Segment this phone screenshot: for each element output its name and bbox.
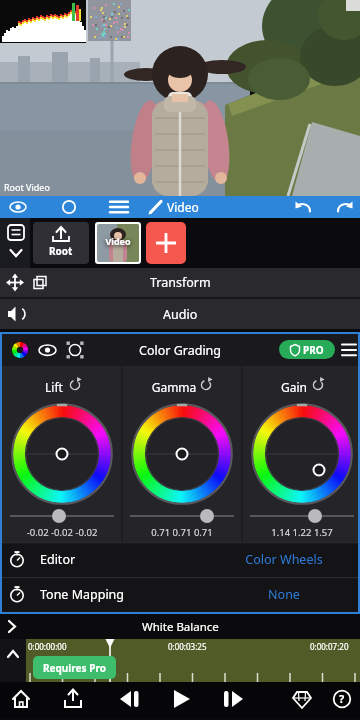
staticText: Color Wheels	[224, 551, 344, 568]
staticText: Lift	[0, 379, 114, 395]
staticText: PRO	[303, 343, 324, 357]
staticText: 0:00:00:00	[28, 641, 67, 652]
button[interactable]	[280, 196, 320, 218]
button[interactable]	[206, 682, 258, 718]
button[interactable]	[332, 334, 358, 366]
staticText: White Balance	[142, 619, 219, 635]
staticText: Gamma	[114, 379, 234, 395]
staticText: 0:00:07:20	[310, 641, 349, 652]
button[interactable]: Tone Mapping	[2, 577, 358, 612]
staticText: 1.14 1.22 1.57	[242, 526, 360, 539]
button[interactable]: Audio	[0, 299, 360, 329]
button[interactable]: Root	[33, 222, 89, 264]
staticText: 0:00:03:25	[168, 641, 207, 652]
staticText: None	[224, 586, 344, 603]
button[interactable]	[34, 334, 62, 366]
staticText: Video	[97, 235, 139, 247]
staticText: Video	[167, 199, 199, 215]
button[interactable]	[154, 682, 206, 718]
staticText: 0.71 0.71 0.71	[122, 526, 242, 539]
button[interactable]: Editor	[2, 542, 358, 577]
button[interactable]	[0, 196, 36, 218]
button[interactable]	[116, 196, 206, 218]
button[interactable]	[270, 682, 318, 718]
button[interactable]	[76, 196, 116, 218]
staticText: Gain	[234, 379, 354, 395]
staticText: Color Grading	[139, 342, 222, 359]
button[interactable]: Requires Pro	[33, 656, 116, 679]
staticText: Tone Mapping	[40, 586, 125, 603]
button[interactable]: Video	[95, 222, 141, 264]
button[interactable]	[106, 682, 154, 718]
button[interactable]	[146, 222, 186, 264]
staticText: ?	[339, 691, 345, 706]
button[interactable]: White Balance	[0, 614, 360, 639]
button[interactable]	[36, 196, 76, 218]
button[interactable]	[320, 196, 360, 218]
button[interactable]: PRO	[279, 340, 335, 359]
staticText: Requires Pro	[43, 661, 106, 675]
button[interactable]	[318, 682, 360, 718]
button[interactable]	[2, 334, 34, 366]
button[interactable]	[44, 682, 94, 718]
staticText: Editor	[40, 551, 76, 568]
button[interactable]	[0, 218, 30, 268]
button[interactable]	[62, 334, 90, 366]
staticText: Audio	[163, 306, 198, 323]
button[interactable]: Transform	[0, 268, 360, 297]
staticText: Root Video	[4, 181, 50, 193]
staticText: -0.02 -0.02 -0.02	[2, 526, 122, 539]
staticText: Root	[49, 244, 73, 258]
staticText: Transform	[150, 274, 211, 291]
button[interactable]	[0, 682, 44, 718]
